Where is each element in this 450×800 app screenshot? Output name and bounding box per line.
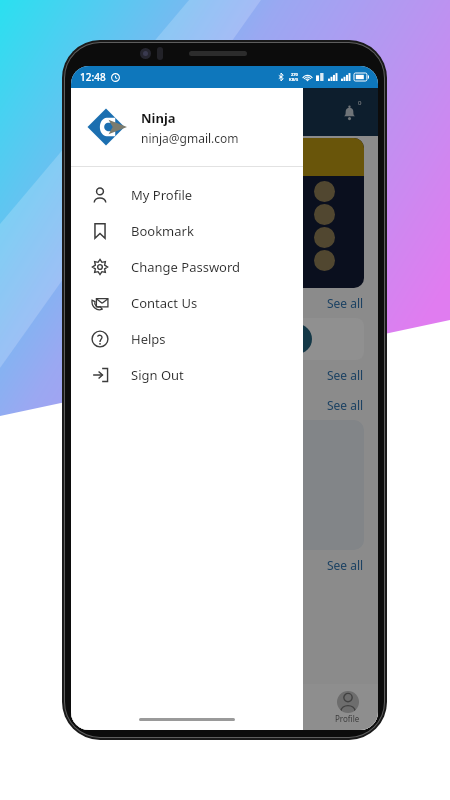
button[interactable]: See all (327, 295, 364, 311)
staticText: Change Password (131, 258, 241, 276)
button[interactable]: See all (327, 557, 364, 573)
button[interactable]: Helps (71, 321, 303, 357)
button[interactable]: Bookmark (71, 213, 303, 249)
staticText: ninja@gmail.com (141, 130, 239, 146)
button[interactable]: Contact Us (71, 285, 303, 321)
staticText: Sign Out (131, 366, 184, 384)
staticText: Ninja (141, 109, 176, 127)
button[interactable]: My Profile (71, 177, 303, 213)
staticText: 12:48 (80, 70, 106, 84)
staticText: My Profile (131, 186, 193, 204)
button[interactable]: See all (327, 397, 364, 413)
staticText: 0 (358, 99, 362, 107)
staticText: Bookmark (131, 222, 194, 240)
button[interactable]: See all (327, 367, 364, 383)
button[interactable]: Notifications (336, 99, 362, 125)
staticText: KB/S (289, 77, 299, 82)
staticText: 270 (291, 72, 298, 77)
button[interactable]: Ninja (71, 88, 303, 166)
button[interactable]: Sign Out (71, 357, 303, 393)
staticText: Contact Us (131, 294, 198, 312)
staticText: Helps (131, 330, 166, 348)
button[interactable]: Change Password (71, 249, 303, 285)
staticText: Profile (335, 713, 360, 724)
staticText: IIFT (140, 330, 165, 348)
